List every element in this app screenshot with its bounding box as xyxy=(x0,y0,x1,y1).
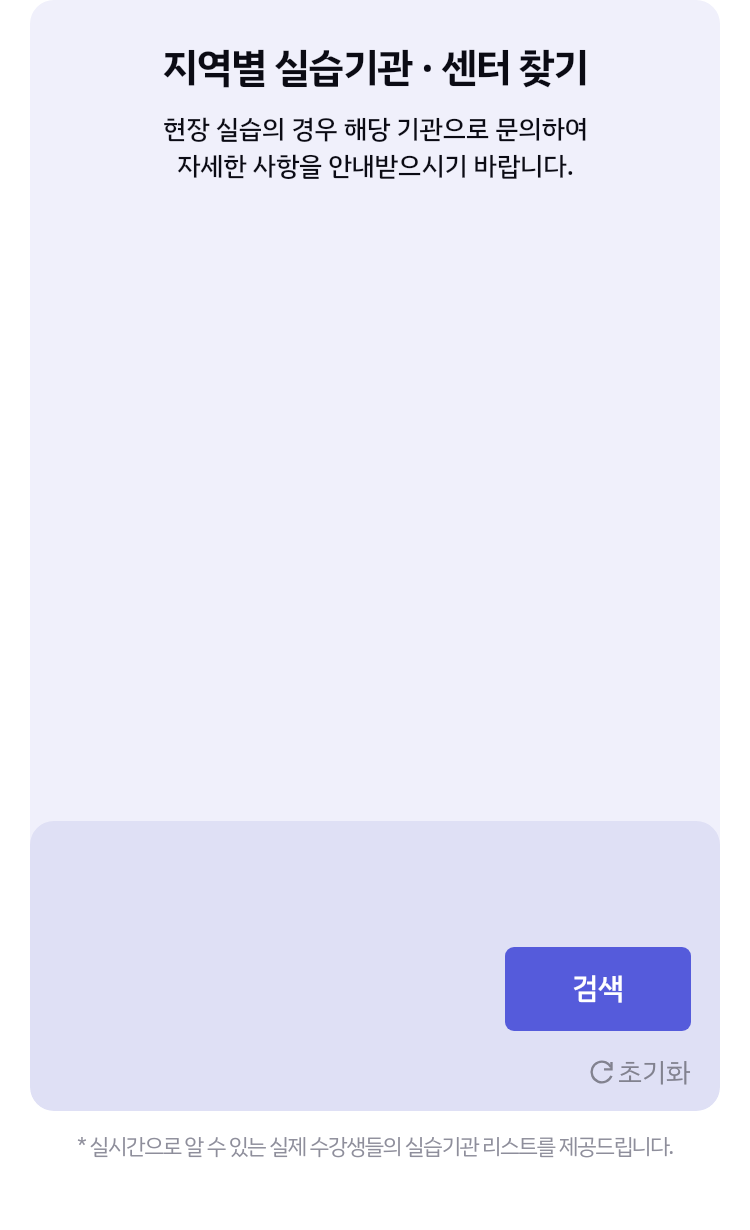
staticText: * 실시간으로 알 수 있는 실제 수강생들의 실습기관 리스트를 제공드립니다… xyxy=(77,1130,673,1163)
button[interactable]: 검색 xyxy=(505,947,691,1031)
staticText: 현장 실습의 경우 해당 기관으로 문의하여 자세한 사항을 안내받으시기 바랍… xyxy=(163,110,588,186)
other: 초기화 xyxy=(590,1060,614,1084)
staticText: 검색 xyxy=(572,967,624,1011)
button[interactable]: 초기화 xyxy=(589,1053,691,1089)
staticText: 지역별 실습기관 · 센터 찾기 xyxy=(162,38,588,98)
staticText: 초기화 xyxy=(618,1053,691,1089)
